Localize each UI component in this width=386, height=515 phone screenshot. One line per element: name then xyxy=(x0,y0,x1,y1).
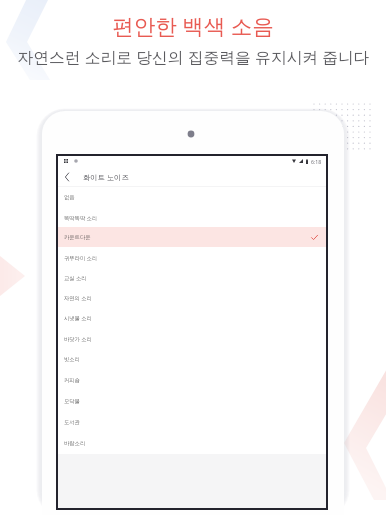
staticText: 도서관 xyxy=(64,419,80,426)
button[interactable]: 바닷가 소리 xyxy=(57,328,327,349)
button[interactable]: 시냇물 소리 xyxy=(57,307,327,328)
button[interactable]: Back xyxy=(57,167,77,186)
staticText: 모닥불 xyxy=(64,398,80,405)
staticText: 카운트다운 xyxy=(64,234,91,241)
staticText: 교실 소리 xyxy=(64,274,87,281)
button[interactable]: 교실 소리 xyxy=(57,267,327,287)
button[interactable]: 똑딱똑딱 소리 xyxy=(57,207,327,227)
staticText: 자연의 소리 xyxy=(64,294,92,301)
button[interactable]: 빗소리 xyxy=(57,349,327,370)
staticText: 화이트 노이즈 xyxy=(83,172,129,182)
staticText: 빗소리 xyxy=(64,356,80,363)
staticText: 자연스런 소리로 당신의 집중력을 유지시켜 줍니다 xyxy=(17,46,370,68)
button[interactable]: 귀뚜라미 소리 xyxy=(57,247,327,267)
button[interactable]: 바람소리 xyxy=(57,433,327,454)
staticText: 똑딱똑딱 소리 xyxy=(64,214,98,221)
staticText: 바닷가 소리 xyxy=(64,335,92,342)
staticText: 없음 xyxy=(64,194,75,201)
button[interactable]: 없음 xyxy=(57,187,327,207)
staticText: 바람소리 xyxy=(64,440,86,447)
button[interactable]: 카운트다운 xyxy=(57,227,327,247)
staticText: 커피숍 xyxy=(64,377,80,384)
button[interactable]: 모닥불 xyxy=(57,391,327,412)
staticText: 시냇물 소리 xyxy=(64,314,92,321)
staticText: 6:18 xyxy=(311,158,322,165)
button[interactable]: 커피숍 xyxy=(57,370,327,391)
button[interactable]: 자연의 소리 xyxy=(57,287,327,307)
button[interactable]: 도서관 xyxy=(57,412,327,433)
staticText: 귀뚜라미 소리 xyxy=(64,254,98,261)
staticText: 편안한 백색 소음 xyxy=(112,11,274,40)
